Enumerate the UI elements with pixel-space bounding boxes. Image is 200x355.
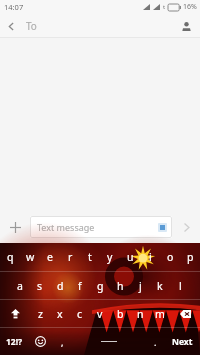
button[interactable]: u — [120, 243, 140, 271]
staticText: a — [17, 279, 23, 293]
staticText: , — [61, 336, 64, 348]
button[interactable]: c — [70, 300, 90, 327]
staticText: g — [97, 279, 104, 293]
button[interactable]: i — [140, 243, 160, 271]
button[interactable]: h — [110, 272, 130, 299]
button[interactable]: f — [70, 272, 90, 299]
staticText: w — [26, 250, 35, 264]
staticText: j — [139, 279, 142, 293]
staticText: s — [37, 279, 43, 293]
staticText: To — [26, 19, 37, 33]
staticText: x — [57, 307, 63, 321]
staticText: h — [117, 279, 124, 293]
button[interactable]: Sim — [158, 223, 167, 232]
staticText: c — [77, 307, 83, 321]
button[interactable]: r — [60, 243, 80, 271]
staticText: f — [78, 279, 82, 293]
staticText: o — [167, 250, 174, 264]
button[interactable]: s — [30, 272, 50, 299]
button[interactable]: Backspace — [170, 300, 200, 327]
button[interactable]: Back — [0, 15, 22, 37]
button[interactable]: p — [180, 243, 200, 271]
staticText: k — [157, 279, 163, 293]
staticText: v — [97, 307, 103, 321]
button[interactable]: d — [50, 272, 70, 299]
button[interactable]: b — [110, 300, 130, 327]
staticText: b — [117, 307, 124, 321]
button[interactable]: Text message — [30, 216, 172, 238]
staticText: n — [137, 307, 144, 321]
staticText: l — [179, 279, 182, 293]
staticText: t — [88, 250, 92, 264]
staticText: z — [38, 307, 43, 321]
button[interactable]: . — [146, 328, 164, 355]
staticText: m — [155, 307, 165, 321]
button[interactable]: Add contact — [176, 16, 196, 36]
button[interactable]: v — [90, 300, 110, 327]
button[interactable]: w — [20, 243, 40, 271]
button[interactable]: Shift — [0, 300, 30, 327]
button[interactable]: , — [53, 328, 71, 355]
button[interactable]: l — [170, 272, 190, 299]
staticText: Next — [172, 336, 193, 348]
staticText: q — [7, 250, 14, 264]
staticText: y — [107, 250, 113, 264]
button[interactable]: t — [80, 243, 100, 271]
button[interactable]: j — [130, 272, 150, 299]
staticText: 14:07 — [4, 2, 24, 12]
button[interactable]: k — [150, 272, 170, 299]
button[interactable]: z — [30, 300, 50, 327]
staticText: 16% — [183, 2, 197, 12]
button[interactable]: Send — [172, 211, 200, 243]
button[interactable]: y — [100, 243, 120, 271]
staticText: e — [47, 250, 53, 264]
staticText: t — [163, 3, 166, 11]
staticText: d — [57, 279, 64, 293]
button[interactable]: a — [10, 272, 30, 299]
button[interactable]: Emoji — [28, 328, 53, 355]
button[interactable]: Space — [71, 328, 146, 355]
button[interactable]: m — [150, 300, 170, 327]
button[interactable]: 12!? — [0, 328, 28, 355]
staticText: 12!? — [6, 336, 23, 348]
staticText: r — [68, 250, 73, 264]
button[interactable]: x — [50, 300, 70, 327]
button[interactable]: e — [40, 243, 60, 271]
button[interactable]: n — [130, 300, 150, 327]
button[interactable]: g — [90, 272, 110, 299]
button[interactable]: Attach — [0, 212, 30, 242]
staticText: . — [154, 336, 157, 348]
staticText: Text message — [37, 221, 95, 233]
staticText: i — [149, 250, 152, 264]
staticText: u — [127, 250, 134, 264]
button[interactable]: o — [160, 243, 180, 271]
button[interactable]: q — [0, 243, 20, 271]
button[interactable]: Next — [164, 328, 200, 355]
staticText: p — [187, 250, 194, 264]
